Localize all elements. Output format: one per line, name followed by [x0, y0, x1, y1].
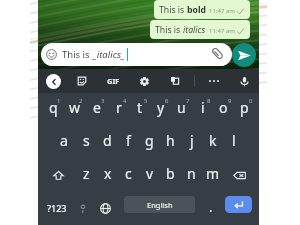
button[interactable]: ?123: [45, 192, 69, 225]
staticText: m: [206, 164, 220, 183]
button[interactable]: 8: [192, 93, 213, 126]
button[interactable]: f: [118, 126, 139, 159]
button[interactable]: 3: [86, 93, 108, 126]
staticText: a: [60, 131, 68, 150]
button[interactable]: Send: [232, 43, 256, 67]
button[interactable]: Shift: [42, 159, 75, 192]
staticText: This is: [62, 48, 93, 61]
button[interactable]: n: [181, 159, 202, 192]
button[interactable]: a: [53, 126, 75, 159]
button[interactable]: x: [97, 159, 118, 192]
staticText: This is: [159, 4, 187, 16]
staticText: 7: [186, 97, 190, 105]
button[interactable]: This is: [150, 20, 250, 39]
staticText: English: [147, 200, 173, 210]
button[interactable]: More options: [207, 69, 221, 93]
staticText: y: [157, 98, 165, 117]
staticText: r: [116, 98, 122, 117]
staticText: 4: [123, 97, 127, 105]
button[interactable]: d: [97, 126, 118, 159]
staticText: p: [240, 98, 249, 117]
staticText: j: [190, 131, 194, 150]
button[interactable]: Change language: [97, 192, 113, 225]
button[interactable]: GIF: [105, 69, 121, 93]
button[interactable]: Voice input: [237, 69, 251, 93]
staticText: q: [49, 98, 58, 117]
staticText: l: [232, 131, 236, 150]
button[interactable]: Backspace: [223, 159, 255, 192]
staticText: 8: [207, 97, 211, 105]
button[interactable]: 6: [150, 93, 171, 126]
staticText: b: [166, 164, 175, 183]
staticText: _italics_: [93, 48, 125, 61]
button[interactable]: 9: [213, 93, 234, 126]
button[interactable]: This is: [41, 43, 232, 66]
button[interactable]: Attach: [211, 47, 224, 60]
staticText: 0: [249, 97, 253, 105]
staticText: 1: [57, 97, 61, 105]
staticText: d: [103, 131, 112, 150]
button[interactable]: 0: [234, 93, 255, 126]
staticText: GIF: [107, 76, 120, 86]
staticText: s: [83, 131, 90, 150]
staticText: n: [187, 164, 196, 183]
button[interactable]: 5: [129, 93, 150, 126]
button[interactable]: z: [75, 159, 97, 192]
button[interactable]: j: [181, 126, 202, 159]
button[interactable]: v: [139, 159, 160, 192]
staticText: g: [145, 131, 154, 150]
button[interactable]: m: [202, 159, 223, 192]
staticText: This is: [155, 24, 183, 36]
button[interactable]: g: [139, 126, 160, 159]
staticText: o: [219, 98, 228, 117]
staticText: 11:47 am: [209, 7, 235, 15]
staticText: 2: [79, 97, 83, 105]
staticText: i: [201, 98, 205, 117]
button[interactable]: Stickers: [75, 69, 89, 93]
button[interactable]: 1: [42, 93, 64, 126]
staticText: x: [104, 164, 112, 183]
button[interactable]: Enter: [225, 196, 252, 213]
staticText: e: [93, 98, 101, 117]
button[interactable]: Clipboard: [168, 69, 182, 93]
button[interactable]: s: [75, 126, 97, 159]
button[interactable]: b: [160, 159, 181, 192]
staticText: 3: [101, 97, 105, 105]
button[interactable]: 2: [64, 93, 86, 126]
staticText: 5: [144, 97, 148, 105]
button[interactable]: English: [124, 196, 195, 213]
staticText: bold: [187, 4, 206, 16]
button[interactable]: Settings: [137, 69, 151, 93]
staticText: t: [137, 98, 143, 117]
button[interactable]: 4: [108, 93, 129, 126]
staticText: italics: [183, 24, 206, 36]
staticText: 11:47 am: [209, 27, 235, 35]
staticText: k: [209, 131, 217, 150]
button[interactable]: This is: [154, 0, 250, 19]
staticText: .: [209, 198, 213, 216]
staticText: h: [166, 131, 175, 150]
button[interactable]: Back: [46, 74, 61, 89]
button[interactable]: c: [118, 159, 139, 192]
button[interactable]: k: [202, 126, 223, 159]
staticText: 6: [165, 97, 169, 105]
button[interactable]: 7: [171, 93, 192, 126]
staticText: f: [126, 131, 131, 150]
button[interactable]: h: [160, 126, 181, 159]
staticText: ?123: [47, 202, 67, 214]
staticText: 9: [228, 97, 232, 105]
staticText: c: [125, 164, 132, 183]
staticText: u: [177, 98, 186, 117]
staticText: z: [83, 164, 90, 183]
button[interactable]: Emoji: [75, 192, 91, 225]
staticText: v: [146, 164, 154, 183]
button[interactable]: .: [203, 192, 219, 225]
staticText: w: [69, 98, 81, 117]
button[interactable]: l: [223, 126, 244, 159]
